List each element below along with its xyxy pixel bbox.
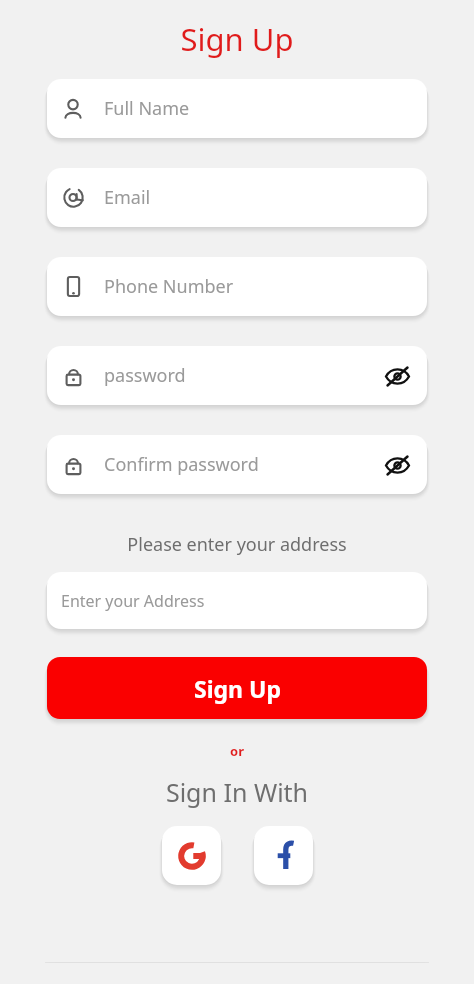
button[interactable]: Enter your Address	[47, 572, 427, 629]
staticText: Confirm password	[104, 452, 259, 477]
staticText: Email	[104, 185, 151, 210]
staticText: Sign Up	[194, 673, 281, 704]
button[interactable]: Sign in with Facebook	[254, 826, 313, 885]
staticText: Sign In With	[0, 775, 474, 809]
button[interactable]: Show password	[377, 356, 417, 396]
button[interactable]: Full Name	[47, 79, 427, 138]
staticText: Full Name	[104, 96, 190, 121]
button[interactable]: Sign in with Google	[162, 826, 221, 885]
staticText: Sign Up	[0, 18, 474, 60]
button[interactable]: Show confirm password	[377, 445, 417, 485]
staticText: Phone Number	[104, 274, 234, 299]
staticText: Enter your Address	[61, 590, 205, 612]
staticText: or	[0, 742, 474, 760]
button[interactable]: Sign Up	[47, 657, 427, 719]
button[interactable]: password	[47, 346, 427, 405]
button[interactable]: Confirm password	[47, 435, 427, 494]
button[interactable]: Phone Number	[47, 257, 427, 316]
staticText: Please enter your address	[47, 532, 427, 557]
button[interactable]: Email	[47, 168, 427, 227]
staticText: password	[104, 363, 186, 388]
